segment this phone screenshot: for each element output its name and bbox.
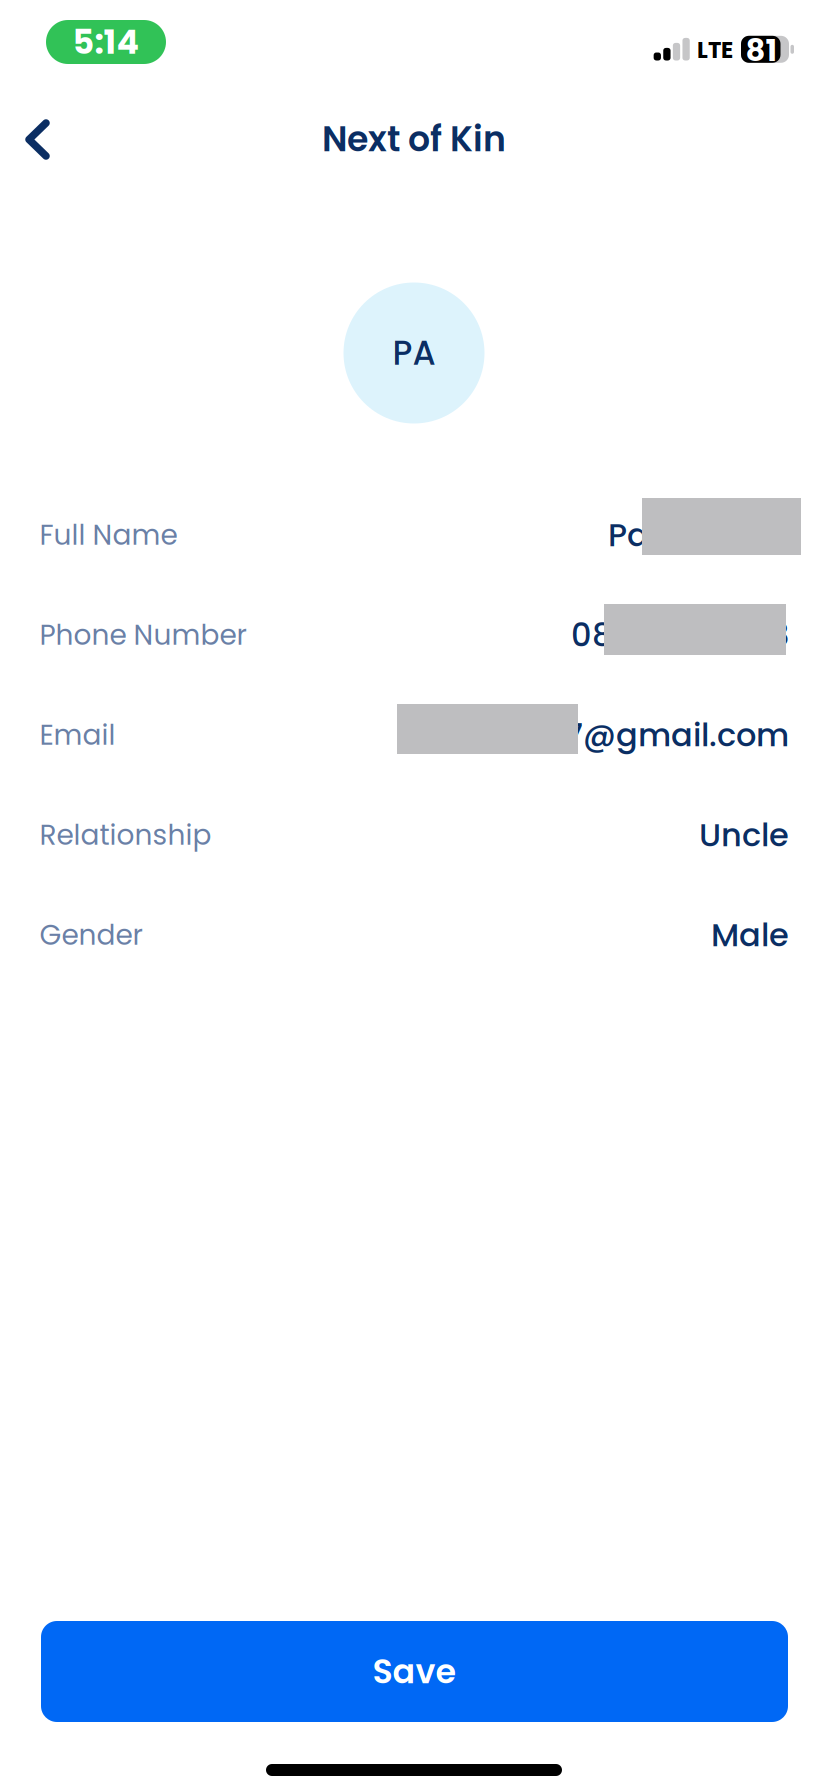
staticText: LTE <box>697 34 733 66</box>
staticText: PA <box>392 330 435 376</box>
staticText: 0801234 5678 <box>571 613 789 657</box>
staticText: Gender <box>39 915 142 955</box>
staticText: Uncle <box>699 813 789 857</box>
staticText: Phone Number <box>39 615 246 655</box>
staticText: Email <box>39 715 115 755</box>
button[interactable]: Save <box>41 1621 788 1722</box>
staticText: Full Name <box>39 515 177 555</box>
staticText: Next of Kin <box>322 115 506 163</box>
staticText: Relationship <box>39 815 211 855</box>
staticText: aulade7@gmail.com <box>450 713 789 757</box>
staticText: Male <box>711 913 789 957</box>
staticText: 81 <box>745 29 777 72</box>
button[interactable]: Back <box>0 96 80 184</box>
staticText: Paul Adeye <box>608 513 789 557</box>
staticText: Save <box>372 1648 456 1695</box>
staticText: 5:14 <box>72 19 139 65</box>
